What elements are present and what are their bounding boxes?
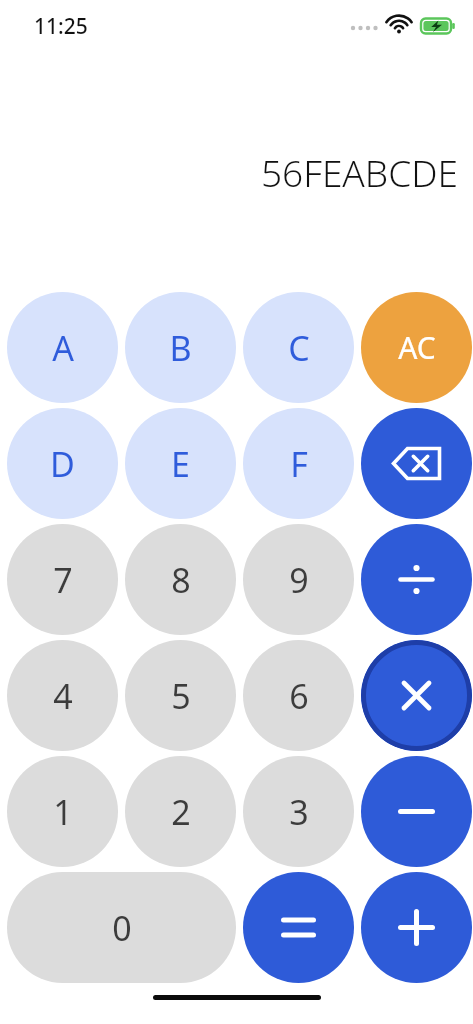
button[interactable]: 8: [125, 524, 236, 635]
button[interactable]: F: [243, 408, 354, 519]
staticText: 4: [53, 673, 73, 719]
button[interactable]: 3: [243, 756, 354, 867]
button[interactable]: Multiply: [361, 640, 472, 751]
staticText: 9: [289, 557, 309, 603]
button[interactable]: D: [7, 408, 118, 519]
button[interactable]: Minus: [361, 756, 472, 867]
button[interactable]: 9: [243, 524, 354, 635]
staticText: 11:25: [34, 12, 88, 41]
staticText: 56FEABCDE: [260, 147, 458, 197]
button[interactable]: 7: [7, 524, 118, 635]
button[interactable]: 4: [7, 640, 118, 751]
button[interactable]: 6: [243, 640, 354, 751]
staticText: 5: [171, 673, 191, 719]
staticText: 3: [289, 789, 309, 835]
staticText: A: [52, 325, 74, 371]
staticText: 1: [53, 789, 73, 835]
staticText: 2: [171, 789, 191, 835]
staticText: AC: [398, 327, 436, 368]
button[interactable]: 5: [125, 640, 236, 751]
button[interactable]: C: [243, 292, 354, 403]
button[interactable]: AC: [361, 292, 472, 403]
button[interactable]: E: [125, 408, 236, 519]
button[interactable]: 0: [7, 872, 236, 983]
button[interactable]: 1: [7, 756, 118, 867]
staticText: 7: [53, 557, 73, 603]
staticText: 6: [289, 673, 309, 719]
staticText: F: [290, 441, 308, 487]
button[interactable]: Backspace: [361, 408, 472, 519]
button[interactable]: Plus: [361, 872, 472, 983]
staticText: D: [50, 441, 75, 487]
staticText: 8: [171, 557, 191, 603]
button[interactable]: B: [125, 292, 236, 403]
button[interactable]: A: [7, 292, 118, 403]
button[interactable]: Equals: [243, 872, 354, 983]
button[interactable]: 2: [125, 756, 236, 867]
staticText: C: [288, 325, 310, 371]
staticText: 0: [112, 905, 132, 951]
staticText: B: [169, 325, 192, 371]
button[interactable]: Divide: [361, 524, 472, 635]
staticText: E: [171, 441, 190, 487]
